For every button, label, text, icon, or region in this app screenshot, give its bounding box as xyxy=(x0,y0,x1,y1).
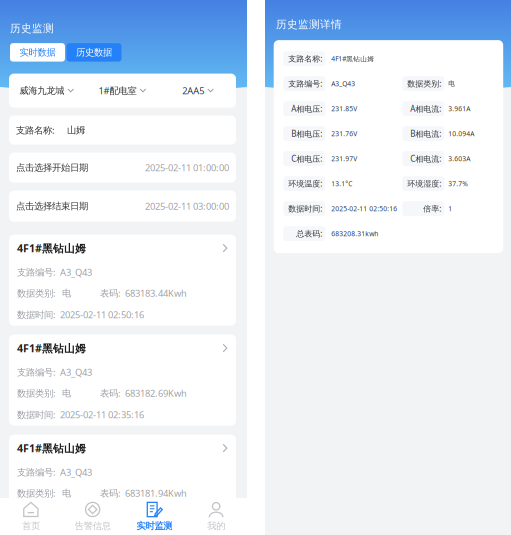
staticText: C相电压: xyxy=(291,153,322,164)
button[interactable]: 历史数据 xyxy=(66,43,121,62)
button[interactable]: 我的 xyxy=(185,499,247,533)
staticText: B相电压: xyxy=(291,128,322,139)
staticText: 总表码: xyxy=(296,228,322,239)
staticText: 环境湿度: xyxy=(407,178,441,189)
staticText: 2025-02-11 02:50:16 xyxy=(331,204,397,213)
staticText: 683182.69Kwh xyxy=(121,387,187,399)
staticText: 告警信息 xyxy=(75,520,111,532)
staticText: 2025-02-11 02:35:16 xyxy=(56,408,144,421)
staticText: 231.97V xyxy=(331,154,357,163)
staticText: 683181.94Kwh xyxy=(121,487,187,499)
staticText: 2025-02-11 02:20:16 xyxy=(56,508,144,521)
staticText: 4F1#黑钻山姆 xyxy=(17,341,86,355)
staticText: 威海九龙城 xyxy=(19,85,64,96)
staticText: 4F1#黑钻山姆 xyxy=(17,241,86,255)
button[interactable]: 点击选择开始日期 xyxy=(9,153,236,183)
staticText: 实时数据 xyxy=(19,47,55,58)
staticText: 电 xyxy=(56,287,71,299)
staticText: 倍率: xyxy=(423,203,441,214)
staticText: 数据类别: xyxy=(17,487,56,499)
staticText: 实时监测 xyxy=(136,520,172,532)
staticText: 683183.44Kwh xyxy=(121,287,187,299)
staticText: 231.85V xyxy=(331,104,357,113)
staticText: C相电流: xyxy=(410,153,441,164)
button[interactable]: 4F1#黑钻山姆 xyxy=(9,235,236,326)
staticText: 数据类别: xyxy=(17,387,56,399)
staticText: 电 xyxy=(56,387,71,399)
staticText: A相电流: xyxy=(410,103,441,114)
staticText: A3_Q43 xyxy=(56,366,92,378)
button[interactable]: 威海九龙城 xyxy=(9,74,85,108)
staticText: 2025-02-11 01:00:00 xyxy=(145,161,229,174)
staticText: 环境温度: xyxy=(288,178,322,189)
staticText: 支路编号: xyxy=(17,366,56,378)
staticText: 2025-02-11 03:00:00 xyxy=(145,200,229,212)
staticText: 我的 xyxy=(207,520,225,532)
staticText: 3.961A xyxy=(448,104,470,113)
staticText: 37.7% xyxy=(448,179,468,188)
staticText: 数据类别: xyxy=(407,78,441,89)
staticText: 3.603A xyxy=(448,154,470,163)
staticText: 4F1#黑钻山姆 xyxy=(331,54,374,63)
staticText: A相电压: xyxy=(291,103,322,114)
staticText: A3_Q43 xyxy=(56,266,92,278)
button[interactable]: 首页 xyxy=(0,499,62,533)
staticText: 数据时间: xyxy=(17,408,56,421)
staticText: 2AA5 xyxy=(182,84,204,97)
staticText: 电 xyxy=(56,487,71,499)
staticText: 数据时间: xyxy=(17,508,56,521)
staticText: 4F1#黑钻山姆 xyxy=(17,441,86,455)
staticText: 1 xyxy=(448,204,452,213)
staticText: 2025-02-11 02:50:16 xyxy=(56,308,144,321)
staticText: 表码: xyxy=(100,287,121,299)
button[interactable]: 告警信息 xyxy=(62,499,124,533)
staticText: 683208.31kwh xyxy=(331,229,378,238)
button[interactable]: 实时监测 xyxy=(123,499,185,533)
staticText: 历史数据 xyxy=(76,47,112,58)
staticText: 数据时间: xyxy=(17,308,56,321)
staticText: 首页 xyxy=(22,520,40,532)
staticText: B相电流: xyxy=(410,128,441,139)
staticText: 历史监测 xyxy=(10,22,54,35)
staticText: 支路名称: xyxy=(16,124,55,136)
staticText: 10.094A xyxy=(448,129,474,138)
staticText: 数据类别: xyxy=(17,287,56,299)
staticText: 支路编号: xyxy=(288,78,322,89)
staticText: 历史监测详情 xyxy=(276,18,342,31)
staticText: 1#配电室 xyxy=(98,84,136,97)
staticText: 点击选择开始日期 xyxy=(16,162,88,173)
staticText: 数据时间: xyxy=(288,203,322,214)
staticText: 支路编号: xyxy=(17,266,56,278)
staticText: 表码: xyxy=(100,387,121,399)
staticText: 电 xyxy=(448,79,455,88)
staticText: 231.76V xyxy=(331,129,357,138)
staticText: 13.1°C xyxy=(331,179,352,188)
staticText: A3_Q43 xyxy=(331,79,355,88)
button[interactable]: 4F1#黑钻山姆 xyxy=(9,435,236,526)
staticText: 支路名称: xyxy=(288,53,322,64)
staticText: 点击选择结束日期 xyxy=(16,200,88,212)
staticText: 表码: xyxy=(100,487,121,499)
button[interactable]: 实时数据 xyxy=(10,43,65,62)
staticText: A3_Q43 xyxy=(56,466,92,478)
button[interactable]: 点击选择结束日期 xyxy=(9,191,236,222)
button[interactable]: 1#配电室 xyxy=(85,74,160,108)
staticText: 支路编号: xyxy=(17,466,56,478)
staticText: 山姆 xyxy=(55,124,85,136)
button[interactable]: 2AA5 xyxy=(160,74,236,108)
button[interactable]: 4F1#黑钻山姆 xyxy=(9,335,236,426)
